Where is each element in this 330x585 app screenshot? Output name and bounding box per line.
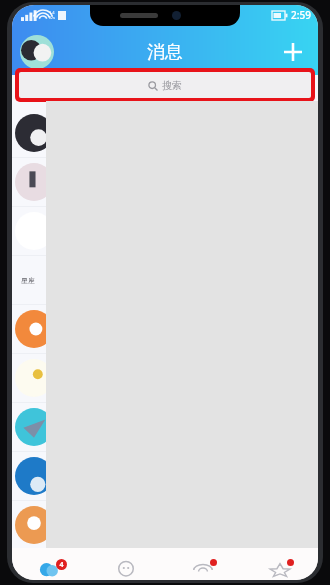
button[interactable]: Messages <box>12 548 88 580</box>
button[interactable] <box>12 452 318 500</box>
button[interactable]: Add <box>278 37 308 67</box>
button[interactable] <box>12 109 318 157</box>
button[interactable] <box>12 354 318 402</box>
button[interactable]: Contacts <box>88 548 164 580</box>
button[interactable] <box>12 501 318 548</box>
button[interactable]: Profile <box>20 35 54 69</box>
staticText: 1.4 K/s <box>49 10 55 20</box>
button[interactable]: Discover <box>164 548 241 580</box>
staticText: 2:59 <box>291 8 311 22</box>
staticText: 消息 <box>147 41 183 64</box>
staticText: 4 <box>59 560 64 570</box>
button[interactable]: Me <box>241 548 318 580</box>
staticText: 星座 <box>21 276 35 285</box>
button[interactable] <box>12 305 318 353</box>
button[interactable] <box>12 403 318 451</box>
button[interactable]: 搜索 <box>19 72 311 98</box>
button[interactable] <box>12 158 318 206</box>
button[interactable] <box>12 207 318 255</box>
staticText: 搜索 <box>162 79 182 92</box>
button[interactable]: 星座 <box>12 256 318 304</box>
